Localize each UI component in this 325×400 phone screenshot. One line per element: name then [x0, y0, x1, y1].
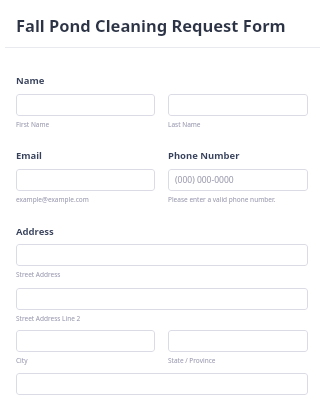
staticText: Name [16, 74, 45, 87]
button[interactable]: Postal / Zip Code [16, 373, 308, 395]
staticText: Phone Number [168, 149, 240, 162]
button[interactable]: Street Address [16, 244, 308, 266]
button[interactable]: First Name [16, 94, 155, 116]
staticText: Last Name [168, 120, 201, 129]
staticText: Street Address [16, 270, 61, 279]
button[interactable]: Street Address Line 2 [16, 288, 308, 310]
button[interactable]: State / Province [168, 330, 308, 352]
staticText: City [16, 356, 28, 365]
staticText: example@example.com [16, 195, 89, 204]
staticText: Fall Pond Cleaning Request Form [16, 14, 286, 36]
staticText: State / Province [168, 356, 216, 365]
staticText: Please enter a valid phone number. [168, 195, 276, 204]
button[interactable]: Email [16, 169, 155, 191]
button[interactable]: Last Name [168, 94, 308, 116]
button[interactable]: City [16, 330, 155, 352]
staticText: (000) 000-0000 [175, 174, 234, 186]
button[interactable]: Phone Number [168, 169, 308, 191]
staticText: Street Address Line 2 [16, 314, 81, 323]
staticText: Address [16, 225, 54, 238]
staticText: First Name [16, 120, 50, 129]
staticText: Email [16, 149, 42, 162]
